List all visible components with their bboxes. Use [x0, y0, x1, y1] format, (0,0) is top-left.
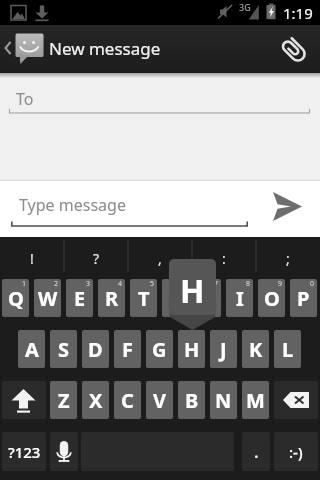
- button[interactable]: K: [242, 330, 269, 368]
- staticText: I: [236, 285, 244, 312]
- staticText: 5: [150, 279, 155, 289]
- staticText: 1: [22, 279, 27, 289]
- staticText: X: [89, 387, 103, 414]
- staticText: To: [16, 88, 34, 110]
- button[interactable]: O: [258, 279, 285, 317]
- button[interactable]: E: [66, 279, 93, 317]
- staticText: D: [88, 336, 103, 363]
- staticText: 8: [246, 279, 251, 289]
- button[interactable]: Navigate up: [0, 25, 159, 73]
- staticText: ,: [158, 249, 162, 268]
- staticText: 4: [118, 279, 123, 289]
- button[interactable]: F: [114, 330, 141, 368]
- button[interactable]: Q: [2, 279, 29, 317]
- button[interactable]: W: [34, 279, 61, 317]
- staticText: ?: [93, 249, 100, 268]
- button[interactable]: P: [290, 279, 317, 317]
- staticText: 1:19: [283, 3, 313, 23]
- button[interactable]: ,: [128, 237, 192, 279]
- staticText: 3: [86, 279, 91, 289]
- button[interactable]: .: [242, 432, 270, 471]
- staticText: T: [138, 285, 150, 312]
- staticText: New message: [49, 37, 161, 60]
- staticText: M: [246, 387, 265, 414]
- button[interactable]: L: [274, 330, 301, 368]
- staticText: :-): [289, 442, 303, 462]
- staticText: O: [264, 285, 280, 312]
- button[interactable]: C: [114, 381, 141, 419]
- staticText: V: [153, 387, 166, 414]
- staticText: .: [254, 440, 259, 463]
- staticText: 9: [278, 279, 283, 289]
- staticText: Q: [8, 285, 24, 312]
- staticText: :: [222, 249, 226, 268]
- staticText: 6: [182, 279, 187, 289]
- button[interactable]: H: [178, 330, 205, 368]
- staticText: 3G: [239, 1, 251, 13]
- button[interactable]: :-): [274, 432, 318, 471]
- staticText: A: [25, 336, 39, 363]
- button[interactable]: G: [146, 330, 173, 368]
- staticText: N: [215, 387, 232, 414]
- staticText: Z: [58, 387, 70, 414]
- button[interactable]: Attach: [272, 25, 320, 73]
- button[interactable]: Voice input: [50, 432, 78, 471]
- staticText: S: [58, 336, 70, 363]
- staticText: G: [152, 336, 167, 363]
- staticText: ;: [286, 249, 290, 268]
- button[interactable]: ;: [256, 237, 320, 279]
- button[interactable]: ?: [64, 237, 128, 279]
- staticText: R: [105, 285, 119, 312]
- staticText: H: [180, 269, 205, 313]
- staticText: 2: [54, 279, 59, 289]
- staticText: F: [122, 336, 133, 363]
- button[interactable]: N: [210, 381, 237, 419]
- staticText: ?123: [8, 442, 41, 462]
- staticText: W: [38, 285, 58, 312]
- staticText: P: [297, 285, 310, 312]
- button[interactable]: U: [194, 279, 221, 317]
- staticText: L: [282, 336, 294, 363]
- button[interactable]: A: [18, 330, 45, 368]
- button[interactable]: X: [82, 381, 109, 419]
- button[interactable]: D: [82, 330, 109, 368]
- button[interactable]: V: [146, 381, 173, 419]
- button[interactable]: J: [210, 330, 237, 368]
- staticText: 7: [214, 279, 219, 289]
- button[interactable]: Z: [50, 381, 77, 419]
- staticText: H: [184, 336, 200, 363]
- button[interactable]: R: [98, 279, 125, 317]
- button[interactable]: Shift: [2, 381, 46, 419]
- staticText: K: [249, 336, 263, 363]
- staticText: C: [121, 387, 134, 414]
- button[interactable]: :: [192, 237, 256, 279]
- button[interactable]: T: [130, 279, 157, 317]
- button[interactable]: S: [50, 330, 77, 368]
- button[interactable]: M: [242, 381, 269, 419]
- button[interactable]: !: [0, 237, 64, 279]
- button[interactable]: I: [226, 279, 253, 317]
- staticText: J: [220, 336, 227, 363]
- staticText: !: [30, 249, 34, 268]
- button[interactable]: Y: [162, 279, 189, 317]
- staticText: E: [74, 285, 86, 312]
- button[interactable]: Delete: [274, 381, 318, 419]
- staticText: B: [185, 387, 199, 414]
- staticText: Type message: [19, 194, 126, 216]
- button[interactable]: B: [178, 381, 205, 419]
- staticText: U: [200, 285, 216, 312]
- button[interactable]: ?123: [2, 432, 46, 471]
- staticText: 0: [310, 279, 315, 289]
